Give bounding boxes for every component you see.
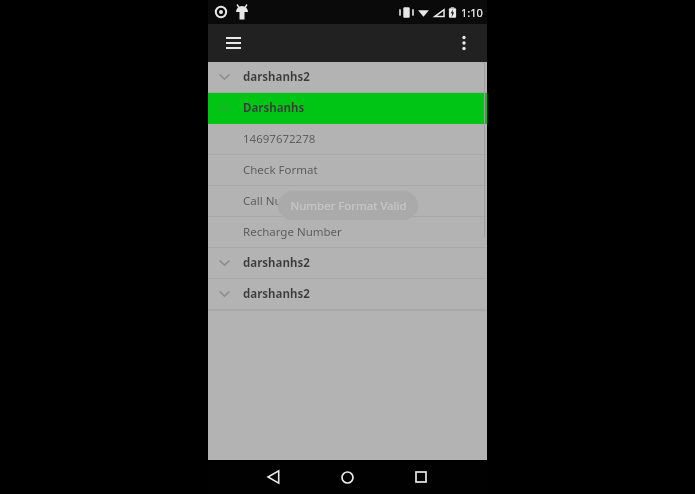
staticText: darshanhs2 — [243, 286, 310, 302]
button[interactable]: Back — [255, 460, 291, 494]
button[interactable]: darshanhs2 — [208, 248, 487, 278]
button[interactable]: Number Format Valid — [278, 191, 418, 220]
button[interactable]: Recent apps — [403, 460, 439, 494]
button[interactable]: Open navigation menu — [216, 26, 250, 60]
button[interactable]: 14697672278 — [208, 124, 487, 154]
staticText: Call Number — [243, 193, 311, 209]
staticText: 14697672278 — [243, 131, 316, 147]
button[interactable]: darshanhs2 — [208, 279, 487, 309]
button[interactable]: Recharge Number — [208, 217, 487, 247]
button[interactable]: Home — [329, 460, 365, 494]
button[interactable]: Darshanhs — [208, 93, 487, 123]
button[interactable]: More options — [447, 26, 481, 60]
button[interactable]: Call Number — [208, 186, 487, 216]
staticText: Recharge Number — [243, 224, 342, 240]
button[interactable]: darshanhs2 — [208, 62, 487, 92]
staticText: darshanhs2 — [243, 69, 310, 85]
button[interactable]: Check Format — [208, 155, 487, 185]
staticText: Check Format — [243, 162, 318, 178]
staticText: Darshanhs — [243, 100, 305, 116]
staticText: darshanhs2 — [243, 255, 310, 271]
staticText: 1:10 — [461, 5, 483, 20]
staticText: Number Format Valid — [290, 198, 407, 214]
